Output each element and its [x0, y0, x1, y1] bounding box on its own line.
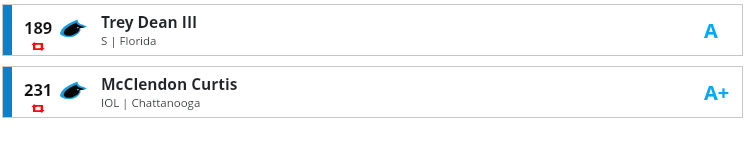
staticText: A+ [704, 79, 730, 106]
other: Traded pick [32, 42, 44, 51]
staticText: 189 [24, 16, 53, 38]
staticText: McClendon Curtis [101, 73, 238, 94]
staticText: IOL | Chattanooga [101, 95, 201, 111]
button[interactable]: 231 [2, 66, 743, 118]
staticText: Trey Dean III [101, 11, 198, 32]
button[interactable]: 189 [2, 4, 743, 56]
staticText: S | Florida [101, 33, 157, 49]
other: Traded pick [32, 104, 44, 113]
staticText: A [704, 17, 718, 44]
staticText: 231 [24, 78, 53, 100]
